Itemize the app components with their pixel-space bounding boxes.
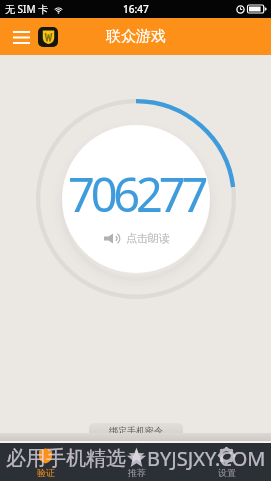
staticText: 点击朗读: [126, 231, 170, 245]
staticText: 必用手机精选: [6, 446, 126, 471]
button[interactable]: Game logo: [38, 27, 58, 47]
staticText: 设置: [218, 467, 236, 478]
staticText: 绑定手机密令: [109, 425, 163, 436]
staticText: 16:47: [123, 2, 149, 16]
staticText: 验证: [37, 467, 55, 478]
button[interactable]: 推荐: [91, 443, 181, 481]
staticText: 无 SIM 卡: [5, 2, 49, 16]
staticText: 联众游戏: [106, 27, 166, 46]
button[interactable]: 绑定手机密令: [89, 423, 183, 437]
button[interactable]: Tap to read code aloud: [62, 125, 210, 273]
button[interactable]: 设置: [181, 443, 271, 481]
staticText: 推荐: [128, 467, 146, 478]
staticText: 706277: [68, 162, 205, 226]
button[interactable]: 验证: [0, 443, 91, 481]
button[interactable]: Menu: [11, 27, 31, 47]
staticText: BYJSJXY.COM: [147, 445, 266, 472]
